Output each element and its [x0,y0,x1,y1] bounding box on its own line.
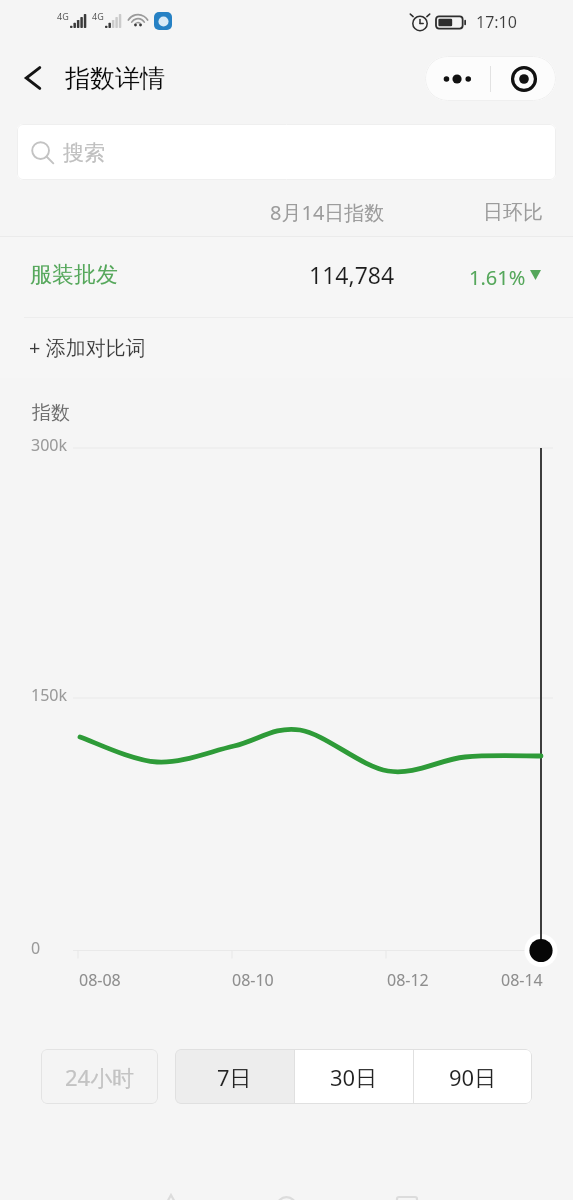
staticText: 指数 [32,401,70,425]
staticText: 08-14 [501,969,543,991]
button[interactable]: 7日 [175,1049,294,1104]
button[interactable]: 24小时 [41,1049,158,1104]
staticText: 4G [57,10,69,22]
staticText: 24小时 [65,1062,135,1092]
staticText: 7日 [217,1062,252,1092]
staticText: 17:10 [476,11,517,33]
staticText: 0 [31,937,41,959]
button[interactable]: 搜索 [17,124,556,180]
staticText: 08-10 [232,969,274,991]
button[interactable]: Home [262,1186,310,1200]
button[interactable]: Recent apps [383,1186,431,1200]
staticText: 1.61% [469,264,526,291]
staticText: 08-12 [387,969,429,991]
button[interactable]: 30日 [295,1049,413,1104]
staticText: 8月14日指数 [270,199,385,226]
staticText: 日环比 [483,200,543,225]
staticText: 搜索 [63,140,105,166]
staticText: 300k [31,434,68,456]
button[interactable]: Back [10,55,56,101]
button[interactable]: Close mini program [491,56,556,101]
staticText: 114,784 [309,259,395,290]
staticText: 指数详情 [65,63,165,94]
staticText: 08-08 [79,969,121,991]
button[interactable]: + 添加对比词 [0,318,573,378]
staticText: + 添加对比词 [29,334,146,361]
staticText: 30日 [330,1062,378,1092]
staticText: 4G [92,10,104,22]
button[interactable]: Back [147,1186,195,1200]
staticText: 150k [31,684,68,706]
button[interactable]: More options [425,56,490,101]
staticText: 90日 [449,1062,497,1092]
button[interactable]: 90日 [414,1049,532,1104]
staticText: 服装批发 [30,261,118,289]
button[interactable]: 服装批发 [0,237,573,317]
